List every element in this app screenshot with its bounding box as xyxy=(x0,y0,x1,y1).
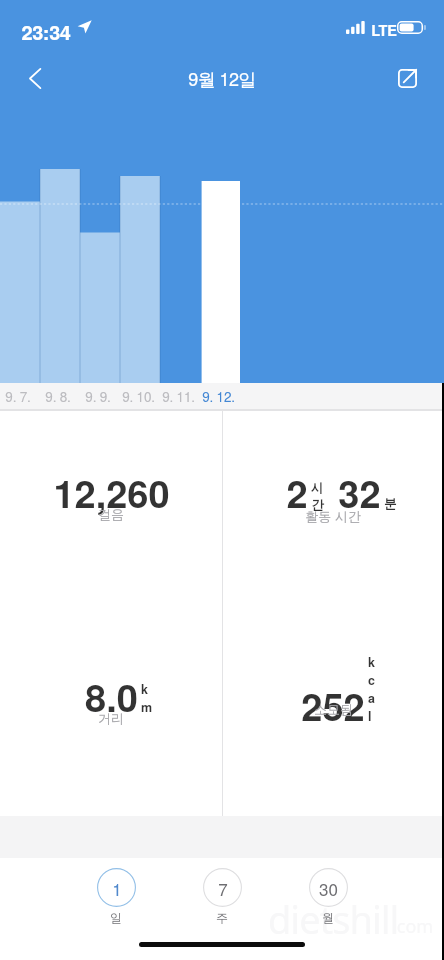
staticText: dietshill xyxy=(268,893,399,945)
staticText: 9. 11. xyxy=(162,387,195,406)
staticText: 8.0 xyxy=(85,669,138,723)
staticText: 월 xyxy=(322,910,334,925)
staticText: 활동 시간 xyxy=(305,506,361,525)
staticText: 9. 7. xyxy=(5,387,31,406)
staticText: 거리 xyxy=(98,710,124,726)
button[interactable]: 7 xyxy=(196,868,248,925)
staticText: 9월 12일 xyxy=(188,65,256,91)
staticText: 일 xyxy=(110,910,122,925)
button[interactable]: Back xyxy=(13,56,57,100)
staticText: 1 xyxy=(112,876,122,900)
staticText: .com xyxy=(392,914,434,939)
button[interactable]: 9. 12. xyxy=(198,383,238,410)
staticText: LTE xyxy=(371,20,397,41)
button[interactable]: 9. 9. xyxy=(78,383,118,410)
button[interactable]: 9. 11. xyxy=(158,383,198,410)
button[interactable]: 9. 8. xyxy=(38,383,78,410)
staticText: 9. 12. xyxy=(202,387,235,406)
button[interactable]: 12,260 xyxy=(0,410,222,612)
staticText: 9. 10. xyxy=(122,387,155,406)
button[interactable]: 1 xyxy=(90,868,142,925)
button[interactable]: 9. 7. xyxy=(0,383,38,410)
staticText: 9. 8. xyxy=(45,387,71,406)
button[interactable]: 30 xyxy=(302,868,354,925)
button[interactable]: 252 xyxy=(222,613,444,817)
staticText: 2 xyxy=(286,465,308,519)
staticText: 소모됨 xyxy=(314,701,353,717)
staticText: 걸음 xyxy=(98,506,124,522)
staticText: 30 xyxy=(319,876,338,900)
button[interactable]: 9. 10. xyxy=(118,383,158,410)
staticText: 12,260 xyxy=(53,465,170,519)
staticText: 9. 9. xyxy=(85,387,111,406)
button[interactable]: Share xyxy=(385,56,429,100)
button[interactable]: 8.0 xyxy=(0,613,222,817)
staticText: 23:34 xyxy=(21,17,71,46)
staticText: 32 xyxy=(338,465,381,519)
staticText: 주 xyxy=(216,910,228,925)
button[interactable]: 2 xyxy=(222,410,444,612)
staticText: 252 xyxy=(301,678,365,732)
staticText: 7 xyxy=(218,876,228,900)
